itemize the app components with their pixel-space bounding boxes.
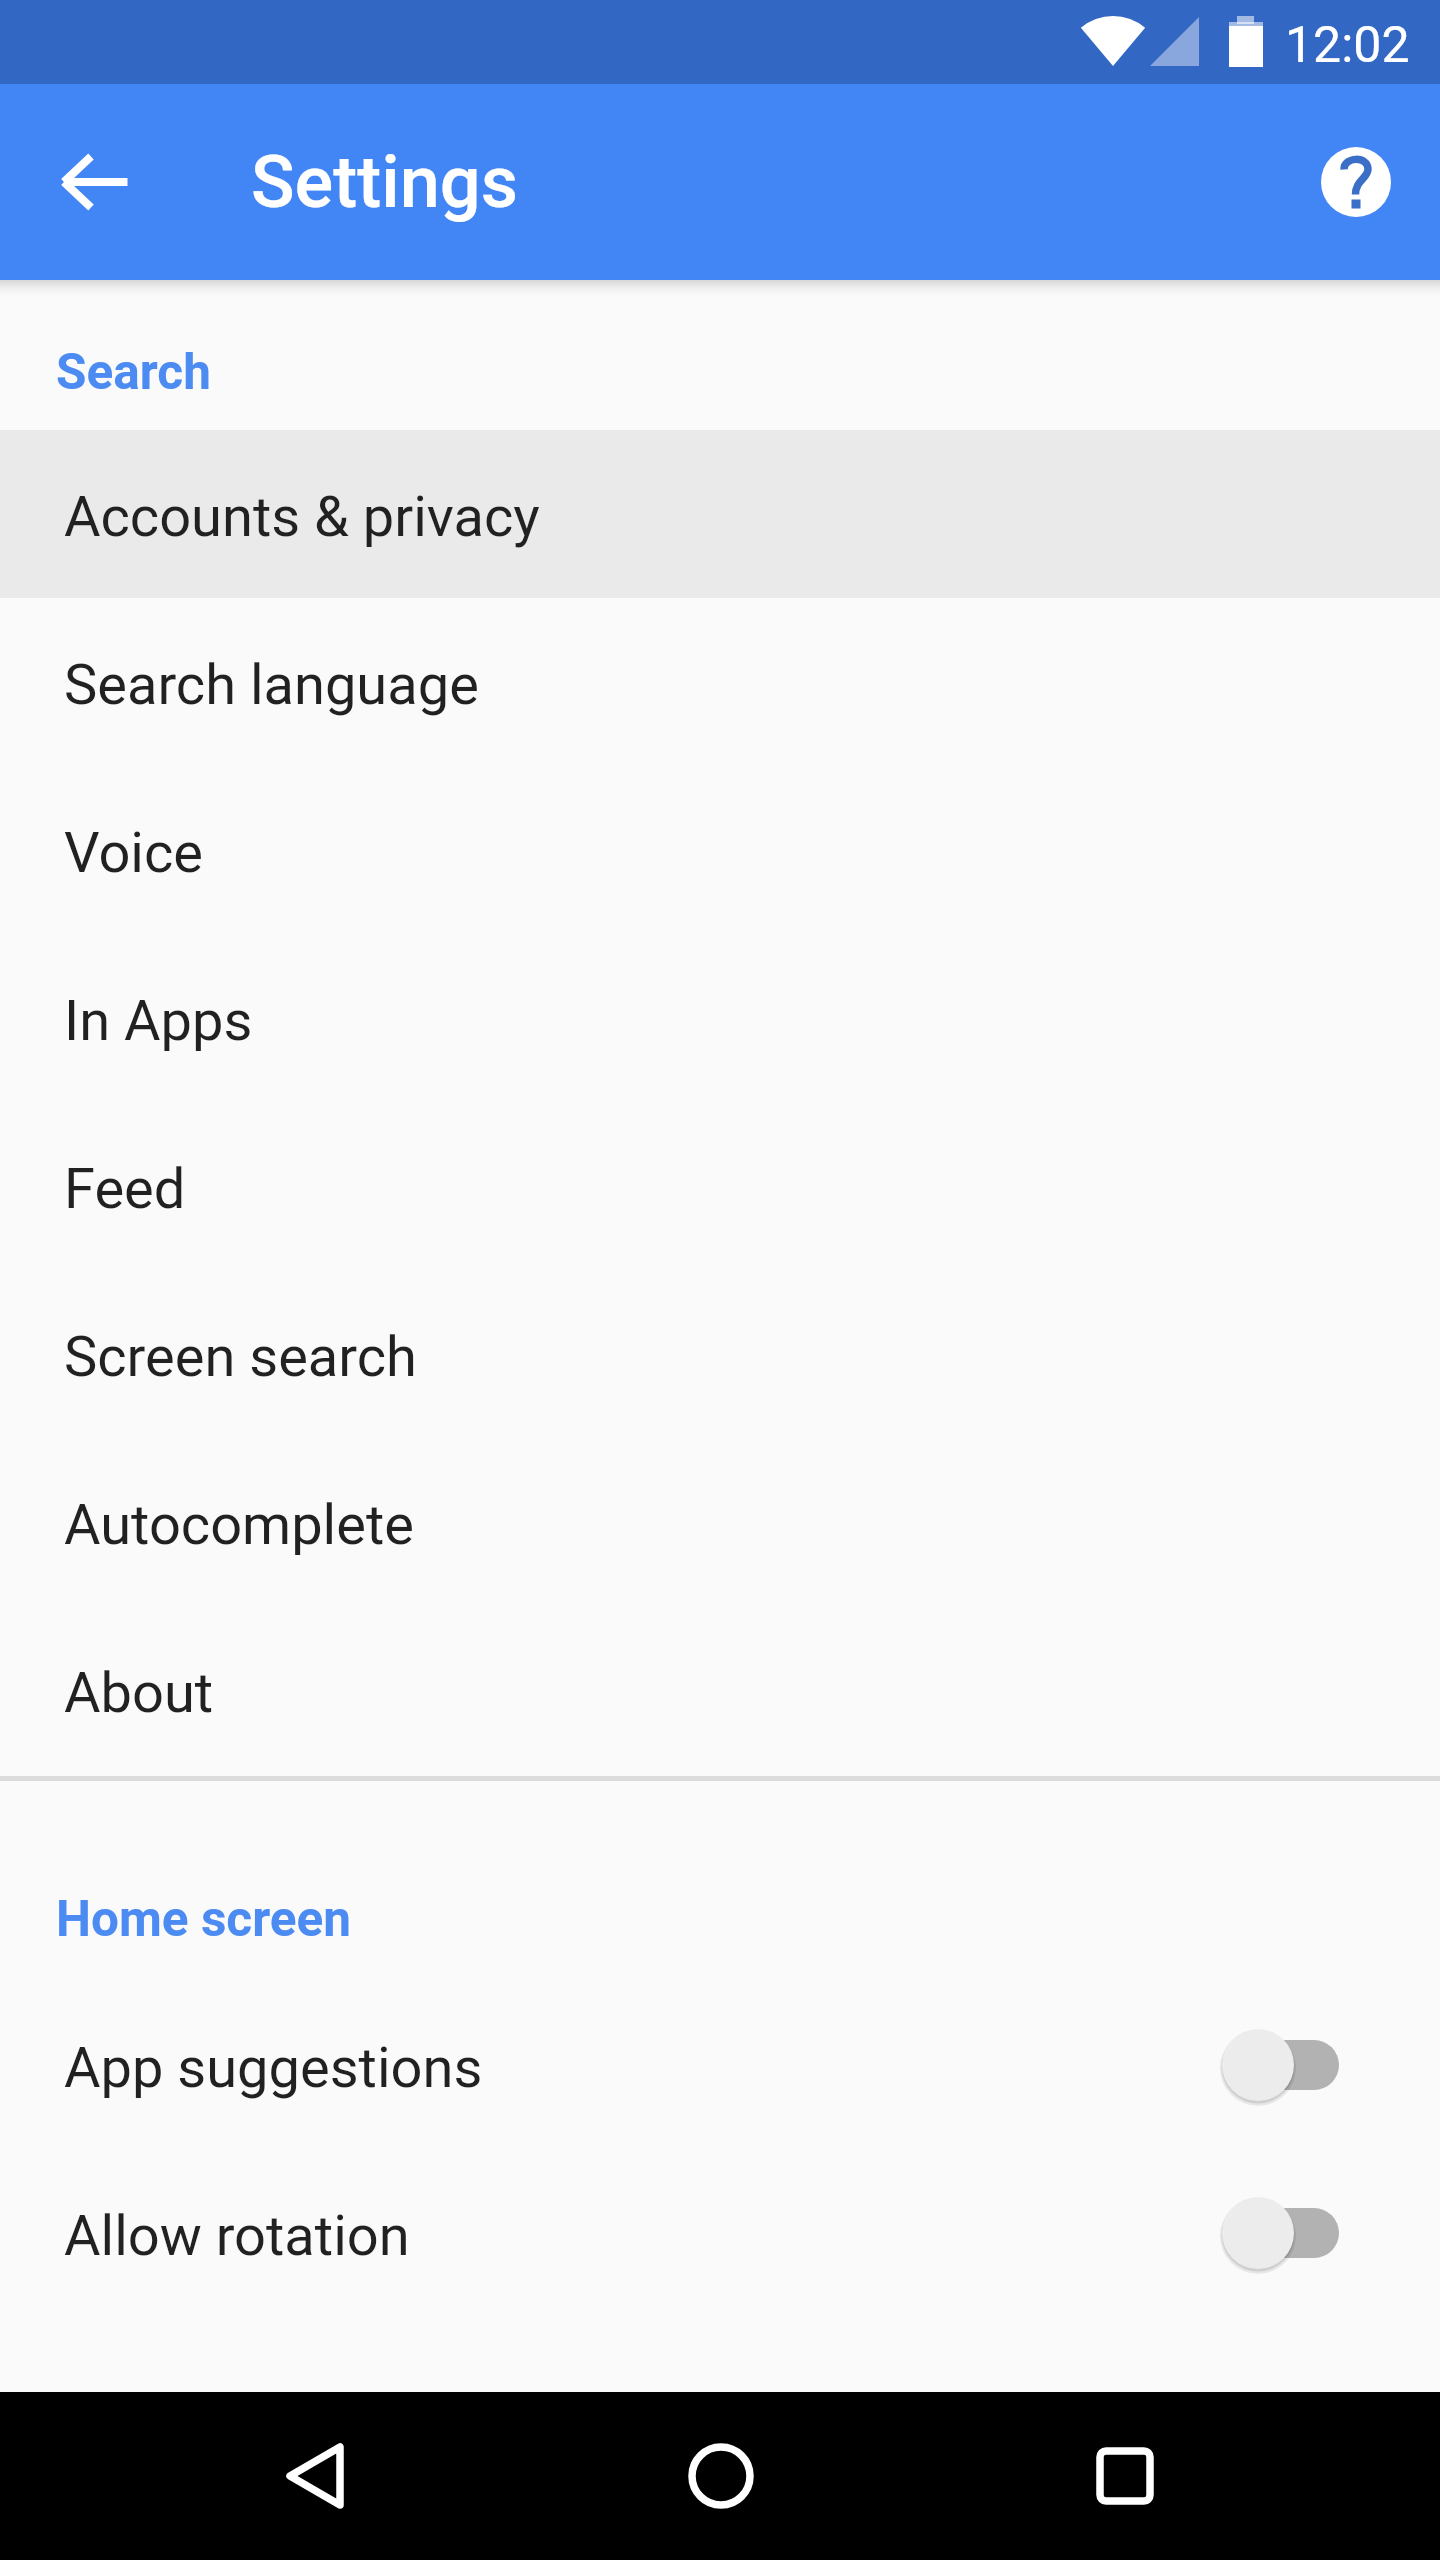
staticText: Autocomplete	[64, 1492, 414, 1558]
staticText: About	[64, 1660, 214, 1726]
button[interactable]: Voice	[0, 766, 1440, 934]
staticText: Accounts & privacy	[64, 484, 540, 550]
button[interactable]: Search language	[0, 598, 1440, 766]
staticText: Search	[56, 343, 211, 401]
button[interactable]: Recent apps	[1041, 2392, 1209, 2560]
staticText: 12:02	[1285, 16, 1410, 75]
staticText: Allow rotation	[64, 2203, 410, 2269]
staticText: Feed	[64, 1156, 186, 1222]
button[interactable]: Back	[231, 2392, 399, 2560]
button[interactable]: Accounts & privacy	[0, 430, 1440, 598]
staticText: Screen search	[64, 1324, 417, 1390]
staticText: App suggestions	[64, 2035, 483, 2101]
staticText: In Apps	[64, 988, 253, 1054]
button[interactable]: Home	[637, 2392, 805, 2560]
button[interactable]: Feed	[0, 1102, 1440, 1270]
button[interactable]: Navigate up	[0, 84, 196, 280]
button[interactable]: Screen search	[0, 1270, 1440, 1438]
button[interactable]: Help	[1272, 98, 1440, 266]
staticText: Settings	[251, 140, 518, 224]
button[interactable]: App suggestions	[0, 1981, 1440, 2149]
button[interactable]: About	[0, 1606, 1440, 1774]
staticText: Home screen	[56, 1890, 351, 1948]
staticText: Voice	[64, 820, 203, 886]
button[interactable]: In Apps	[0, 934, 1440, 1102]
button[interactable]: Autocomplete	[0, 1438, 1440, 1606]
button[interactable]: Allow rotation	[0, 2149, 1440, 2317]
staticText: Search language	[64, 652, 479, 718]
